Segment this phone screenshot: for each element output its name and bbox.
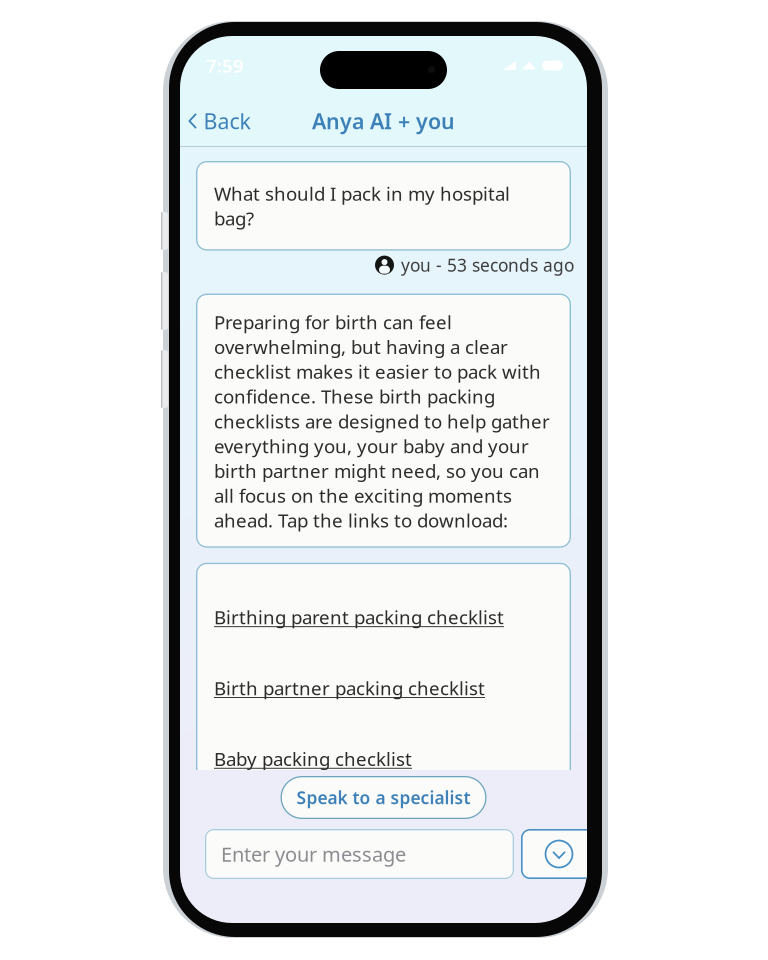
staticText: you - 53 seconds ago <box>401 254 574 277</box>
staticText: Baby packing checklist <box>214 746 412 771</box>
staticText: Anya AI + you <box>312 107 455 135</box>
button[interactable]: Speak to a specialist <box>280 776 486 819</box>
staticText: Birthing parent packing checklist <box>214 605 504 629</box>
button[interactable]: Birth partner packing checklist <box>214 675 551 700</box>
staticText: Birth partner packing checklist <box>214 675 485 700</box>
staticText: Enter your message <box>221 841 406 867</box>
button[interactable]: Enter your message <box>205 829 514 879</box>
staticText: 7:59 <box>206 53 244 78</box>
staticText: Back <box>203 107 250 135</box>
button[interactable]: Baby packing checklist <box>214 746 551 771</box>
staticText: Speak to a specialist <box>296 786 470 809</box>
button[interactable]: Birthing parent packing checklist <box>214 605 551 629</box>
button[interactable]: Collapse keyboard <box>521 829 597 879</box>
button[interactable]: Back <box>180 99 264 143</box>
staticText: Preparing for birth can feel overwhelmin… <box>214 310 550 533</box>
staticText: What should I pack in my hospital bag? <box>214 181 510 231</box>
